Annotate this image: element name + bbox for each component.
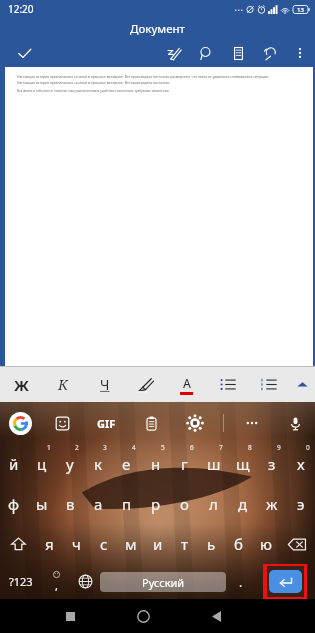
button[interactable]: Search bbox=[193, 39, 219, 67]
button[interactable]: я bbox=[36, 524, 63, 564]
button[interactable]: щ bbox=[228, 444, 257, 484]
staticText: К bbox=[58, 375, 68, 394]
button[interactable]: Change language bbox=[71, 564, 100, 599]
staticText: Ж bbox=[14, 375, 29, 395]
staticText: з bbox=[268, 454, 276, 474]
button[interactable]: Underline bbox=[84, 367, 125, 402]
button[interactable]: . bbox=[226, 564, 255, 599]
button[interactable]: в bbox=[56, 484, 84, 524]
button[interactable]: Font color bbox=[166, 367, 207, 402]
button[interactable]: Collapse bbox=[289, 367, 315, 402]
button[interactable]: к bbox=[84, 444, 112, 484]
button[interactable]: у bbox=[56, 444, 84, 484]
staticText: 8 bbox=[248, 443, 252, 452]
staticText: 2 bbox=[75, 443, 79, 452]
button[interactable]: Русский bbox=[100, 572, 226, 592]
button[interactable]: Undo bbox=[257, 39, 283, 67]
button[interactable]: ы bbox=[28, 484, 56, 524]
staticText: а bbox=[94, 494, 103, 514]
button[interactable]: Enter bbox=[269, 570, 302, 593]
staticText: ф bbox=[8, 494, 20, 514]
button[interactable]: и bbox=[144, 524, 171, 564]
button[interactable]: Back bbox=[199, 599, 233, 633]
staticText: ш bbox=[207, 454, 221, 474]
staticText: ч bbox=[72, 534, 81, 554]
button[interactable]: т bbox=[171, 524, 198, 564]
staticText: н bbox=[151, 454, 161, 474]
staticText: 0 bbox=[306, 443, 310, 452]
button[interactable]: ?123 bbox=[0, 564, 42, 599]
button[interactable]: м bbox=[117, 524, 144, 564]
button[interactable]: Done bbox=[0, 39, 48, 67]
staticText: 3 bbox=[103, 443, 107, 452]
staticText: , bbox=[55, 578, 58, 593]
staticText: ы bbox=[36, 494, 48, 514]
button[interactable]: ц bbox=[28, 444, 56, 484]
button[interactable]: ш bbox=[199, 444, 228, 484]
button[interactable]: е bbox=[112, 444, 141, 484]
button[interactable]: Italic bbox=[42, 367, 84, 402]
staticText: . bbox=[239, 574, 243, 590]
staticText: 9 bbox=[277, 443, 281, 452]
button[interactable]: Clipboard bbox=[138, 402, 164, 444]
staticText: ц bbox=[37, 454, 47, 474]
button[interactable]: н bbox=[141, 444, 170, 484]
button[interactable]: Voice input bbox=[282, 402, 308, 444]
staticText: г bbox=[181, 454, 188, 474]
staticText: в bbox=[66, 494, 75, 514]
staticText: л bbox=[209, 494, 218, 514]
staticText: с bbox=[100, 534, 108, 554]
button[interactable]: ч bbox=[63, 524, 90, 564]
button[interactable]: о bbox=[170, 484, 199, 524]
staticText: 1 bbox=[47, 443, 51, 452]
staticText: ь bbox=[207, 534, 216, 554]
button[interactable]: х bbox=[286, 444, 315, 484]
button[interactable]: ь bbox=[198, 524, 225, 564]
button[interactable]: Recents bbox=[53, 599, 87, 633]
staticText: я bbox=[45, 534, 54, 554]
staticText: б bbox=[234, 534, 243, 554]
button[interactable]: Highlight bbox=[125, 367, 166, 402]
button[interactable]: Numbered list bbox=[248, 367, 289, 402]
staticText: э bbox=[297, 494, 305, 514]
button[interactable]: з bbox=[257, 444, 286, 484]
button[interactable]: Ink bbox=[161, 39, 187, 67]
button[interactable]: б bbox=[225, 524, 252, 564]
button[interactable]: ю bbox=[252, 524, 279, 564]
button[interactable]: More options bbox=[287, 39, 313, 67]
button[interactable]: Comma and emoji bbox=[42, 564, 71, 599]
button[interactable]: Stickers bbox=[49, 402, 75, 444]
button[interactable]: ж bbox=[257, 484, 286, 524]
button[interactable]: Settings bbox=[182, 402, 208, 444]
staticText: A bbox=[183, 375, 191, 391]
button[interactable]: GIF bbox=[97, 402, 116, 444]
staticText: 6 bbox=[190, 443, 194, 452]
button[interactable]: Home bbox=[126, 599, 160, 633]
staticText: о bbox=[180, 494, 189, 514]
button[interactable]: More bbox=[239, 402, 265, 444]
button[interactable]: й bbox=[0, 444, 28, 484]
staticText: 4 bbox=[132, 443, 136, 452]
staticText: Документ bbox=[130, 21, 185, 37]
staticText: Настоящая история приключилась со мной в… bbox=[17, 74, 289, 78]
staticText: 5 bbox=[161, 443, 165, 452]
button[interactable]: л bbox=[199, 484, 228, 524]
staticText: ж bbox=[266, 494, 278, 514]
button[interactable]: д bbox=[228, 484, 257, 524]
button[interactable]: с bbox=[90, 524, 117, 564]
staticText: GIF bbox=[97, 416, 116, 431]
button[interactable]: View bbox=[225, 39, 251, 67]
button[interactable]: р bbox=[141, 484, 170, 524]
button[interactable]: п bbox=[112, 484, 141, 524]
staticText: у bbox=[66, 454, 74, 474]
staticText: и bbox=[153, 534, 163, 554]
button[interactable]: ф bbox=[0, 484, 28, 524]
button[interactable]: а bbox=[84, 484, 112, 524]
button[interactable]: Shift bbox=[0, 524, 36, 564]
button[interactable]: Bold bbox=[0, 367, 42, 402]
button[interactable]: Bulleted list bbox=[207, 367, 248, 402]
button[interactable]: э bbox=[286, 484, 315, 524]
button[interactable]: Google bbox=[9, 412, 32, 435]
button[interactable]: Backspace bbox=[279, 524, 315, 564]
button[interactable]: г bbox=[170, 444, 199, 484]
